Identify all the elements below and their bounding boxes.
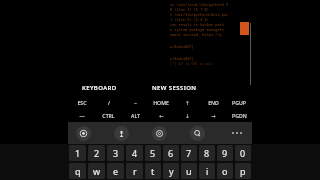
staticText: 0 (line 1) (5.7.0) [170, 7, 209, 12]
button[interactable]: → [200, 109, 226, 122]
staticText: ALT [131, 112, 140, 119]
button[interactable]: u [181, 163, 197, 179]
button[interactable]: / [95, 96, 122, 109]
staticText: HOME [153, 99, 169, 106]
staticText: can result in broken pack [170, 22, 224, 27]
staticText: ↓ [185, 113, 190, 119]
button[interactable]: 3 [107, 145, 124, 161]
staticText: t [151, 165, 155, 177]
button[interactable]: ESC [68, 96, 95, 109]
staticText: END [208, 99, 219, 106]
staticText: / [108, 99, 110, 106]
staticText: 5 [150, 147, 156, 159]
staticText: CTRL [102, 112, 115, 119]
staticText: – [134, 99, 137, 106]
button[interactable]: 4 [126, 145, 143, 161]
staticText: w [93, 165, 101, 177]
staticText: → [211, 113, 216, 119]
button[interactable]: KEYBOARD [68, 80, 130, 96]
staticText: ← [159, 113, 164, 119]
button[interactable]: 0 [235, 145, 251, 161]
button[interactable]: 7 [181, 145, 197, 161]
button[interactable]: Voice typing options [76, 126, 91, 141]
button[interactable]: w [88, 163, 105, 179]
staticText: e system package managers [170, 27, 224, 32]
button[interactable]: — [68, 109, 95, 122]
button[interactable]: CTRL [95, 109, 122, 122]
staticText: t /usr/lib/python3/dist-pac [170, 12, 229, 17]
staticText: p [240, 165, 246, 177]
button[interactable]: ← [148, 109, 174, 122]
staticText: u/AndroRAT] [170, 56, 194, 61]
staticText: in /usr/local/lib/python3.9 [170, 2, 229, 7]
staticText: 4 [132, 147, 138, 159]
button[interactable]: PGDN [226, 109, 252, 122]
staticText: nment instead; https://p [170, 32, 222, 37]
staticText: u/AndroRAT] [170, 44, 194, 49]
staticText: 0 [240, 147, 246, 159]
staticText: 7 [186, 147, 192, 159]
staticText: o [222, 165, 228, 177]
staticText: 8 [204, 147, 210, 159]
button[interactable]: 8 [199, 145, 215, 161]
button[interactable]: 1 [69, 145, 86, 161]
button[interactable]: y [163, 163, 179, 179]
staticText: r [133, 165, 137, 177]
button[interactable]: t [145, 163, 161, 179]
button[interactable]: p [235, 163, 251, 179]
button[interactable]: r [126, 163, 143, 179]
button[interactable]: ↑ [174, 96, 200, 109]
staticText: 2 [94, 147, 100, 159]
button[interactable]: o [217, 163, 233, 179]
staticText: i [206, 165, 209, 177]
button[interactable]: END [200, 96, 226, 109]
button[interactable]: 6 [163, 145, 179, 161]
button[interactable]: HOME [148, 96, 174, 109]
button[interactable]: Voice input [114, 126, 129, 141]
staticText: 9 [222, 147, 228, 159]
button[interactable]: q [69, 163, 86, 179]
staticText: 1 [75, 147, 81, 159]
staticText: q [75, 165, 81, 177]
staticText: y [169, 165, 174, 177]
staticText: 6 [168, 147, 174, 159]
staticText: e [113, 165, 119, 177]
staticText: KEYBOARD [82, 84, 117, 92]
staticText: [!] AV is NOT a well [170, 61, 214, 66]
staticText: NEW SESSION [152, 84, 197, 92]
staticText: ↑ [185, 100, 190, 106]
button[interactable]: ↓ [174, 109, 200, 122]
staticText: PGDN [232, 112, 247, 119]
button[interactable]: 5 [145, 145, 161, 161]
button[interactable]: – [122, 96, 148, 109]
staticText: PGUP [232, 99, 246, 106]
staticText: — [79, 112, 85, 119]
button[interactable]: e [107, 163, 124, 179]
button[interactable]: Stickers [152, 126, 167, 141]
button[interactable]: 2 [88, 145, 105, 161]
button[interactable]: ALT [122, 109, 148, 122]
staticText: u [186, 165, 192, 177]
staticText: ESC [77, 99, 87, 106]
button[interactable]: More options [228, 124, 246, 142]
button[interactable]: Search [190, 126, 205, 141]
button[interactable]: 9 [217, 145, 233, 161]
button[interactable]: NEW SESSION [140, 80, 208, 96]
staticText: 1 (line 5) (5.4.5) [170, 17, 209, 22]
staticText: 3 [113, 147, 119, 159]
button[interactable]: i [199, 163, 215, 179]
button[interactable]: PGUP [226, 96, 252, 109]
